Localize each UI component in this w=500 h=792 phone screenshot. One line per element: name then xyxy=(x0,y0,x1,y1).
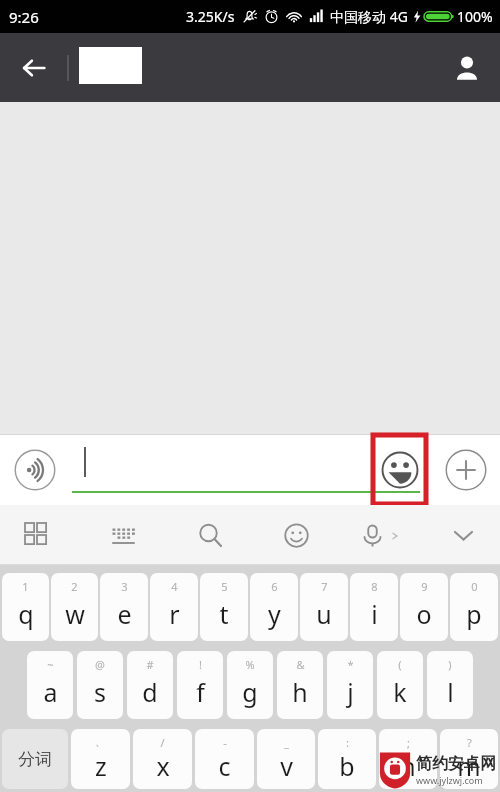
staticText: 100% xyxy=(457,7,493,26)
staticText: d xyxy=(142,675,158,709)
staticText: b xyxy=(339,749,355,783)
button[interactable]: 1 xyxy=(2,573,49,641)
staticText: u xyxy=(316,597,332,631)
staticText: f xyxy=(196,675,205,709)
button[interactable]: ( xyxy=(377,651,423,719)
staticText: j xyxy=(347,675,354,709)
staticText: q xyxy=(18,597,34,631)
button[interactable]: Search xyxy=(187,511,233,559)
staticText: 9:26 xyxy=(9,7,39,27)
button[interactable]: ) xyxy=(427,651,473,719)
staticText: ( xyxy=(398,657,402,672)
button[interactable]: 9 xyxy=(400,573,448,641)
button[interactable]: @ xyxy=(77,651,123,719)
staticText: & xyxy=(296,657,305,672)
staticText: * xyxy=(347,657,354,672)
button[interactable]: 4 xyxy=(150,573,198,641)
staticText: 6 xyxy=(271,579,278,594)
button[interactable]: 2 xyxy=(51,573,98,641)
button[interactable]: Apps xyxy=(14,511,60,559)
staticText: g xyxy=(242,675,258,709)
staticText: e xyxy=(117,597,132,631)
staticText: y xyxy=(268,597,281,631)
staticText: www.jylzwj.com xyxy=(416,774,483,786)
staticText: w xyxy=(65,597,85,631)
button[interactable]: Emoticons xyxy=(273,511,319,559)
button[interactable]: ; xyxy=(379,729,437,789)
staticText: 0 xyxy=(471,579,478,594)
staticText: _ xyxy=(284,735,289,750)
staticText: a xyxy=(43,675,58,709)
button[interactable]: 0 xyxy=(450,573,498,641)
button[interactable]: : xyxy=(318,729,376,789)
button[interactable]: 、 xyxy=(71,729,130,789)
staticText: p xyxy=(466,597,482,631)
staticText: ~ xyxy=(47,657,54,672)
button[interactable]: 5 xyxy=(200,573,248,641)
button[interactable]: ! xyxy=(177,651,223,719)
button[interactable]: & xyxy=(277,651,323,719)
staticText: 分词 xyxy=(18,749,52,770)
button[interactable]: 分词 xyxy=(2,729,68,789)
button[interactable]: / xyxy=(133,729,192,789)
staticText: n xyxy=(400,749,416,783)
button[interactable]: # xyxy=(127,651,173,719)
staticText: 、 xyxy=(95,735,106,749)
staticText: k xyxy=(393,675,407,709)
staticText: i xyxy=(371,597,378,631)
staticText: 3.25K/s xyxy=(186,7,235,26)
staticText: v xyxy=(280,749,293,783)
staticText: 8 xyxy=(371,579,378,594)
staticText: z xyxy=(95,749,107,783)
button[interactable]: Voice input xyxy=(12,447,58,493)
staticText: ! xyxy=(199,657,202,672)
button[interactable]: Keyboard layout xyxy=(100,511,146,559)
staticText: @ xyxy=(95,657,105,672)
staticText: h xyxy=(292,675,308,709)
button[interactable]: ~ xyxy=(27,651,73,719)
button[interactable]: Contact profile xyxy=(440,41,494,95)
button[interactable]: 6 xyxy=(250,573,298,641)
button[interactable]: 8 xyxy=(350,573,398,641)
staticText: # xyxy=(146,657,154,672)
staticText: ; xyxy=(407,735,410,750)
staticText: 5 xyxy=(221,579,228,594)
button[interactable]: 3 xyxy=(100,573,148,641)
staticText: / xyxy=(160,735,165,750)
button[interactable]: _ xyxy=(257,729,315,789)
button[interactable]: * xyxy=(327,651,373,719)
staticText: ) xyxy=(448,657,452,672)
staticText: o xyxy=(416,597,432,631)
staticText: x xyxy=(156,749,170,783)
button[interactable]: Emoji xyxy=(373,435,426,504)
staticText: 3 xyxy=(121,579,128,594)
staticText: 7 xyxy=(321,579,328,594)
staticText: 1 xyxy=(22,579,29,594)
button[interactable]: ? xyxy=(440,729,498,789)
staticText: 9 xyxy=(421,579,428,594)
button[interactable]: Hide keyboard xyxy=(440,511,486,559)
staticText: c xyxy=(218,749,231,783)
staticText: 简约安卓网 xyxy=(416,754,496,774)
button[interactable]: Back xyxy=(8,42,60,94)
staticText: t xyxy=(219,597,229,631)
staticText: s xyxy=(94,675,106,709)
staticText: r xyxy=(169,597,180,631)
button[interactable]: More options xyxy=(443,447,489,493)
staticText: m xyxy=(457,749,481,783)
button[interactable]: 7 xyxy=(300,573,348,641)
staticText: 中国移动 4G xyxy=(330,7,408,26)
staticText: ? xyxy=(467,735,472,750)
staticText: 2 xyxy=(71,579,78,594)
staticText: : xyxy=(346,735,349,750)
staticText: l xyxy=(447,675,454,709)
staticText: - xyxy=(223,735,227,750)
button[interactable]: Voice xyxy=(360,511,400,559)
staticText: % xyxy=(245,657,255,672)
staticText: 4 xyxy=(171,579,178,594)
button[interactable]: - xyxy=(195,729,254,789)
button[interactable]: % xyxy=(227,651,273,719)
